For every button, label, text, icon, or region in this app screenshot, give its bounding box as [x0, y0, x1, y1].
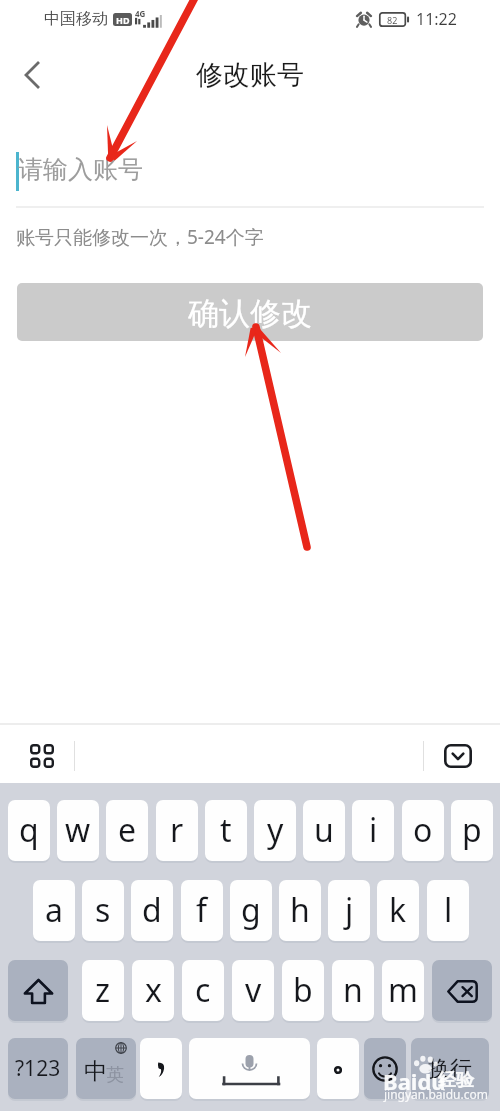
button[interactable]: c	[182, 960, 224, 1021]
button[interactable]: 请输入账号	[18, 154, 143, 185]
staticText: k	[389, 888, 407, 932]
staticText: 82	[387, 14, 398, 26]
button[interactable]: Keyboard layouts	[24, 738, 60, 774]
button[interactable]: l	[427, 880, 469, 941]
button[interactable]: s	[82, 880, 124, 941]
staticText: w	[65, 808, 91, 852]
button[interactable]: u	[303, 800, 345, 861]
staticText: b	[293, 968, 313, 1012]
staticText: s	[95, 888, 111, 932]
button[interactable]: t	[205, 800, 247, 861]
staticText: 经验	[438, 1069, 474, 1092]
button[interactable]: y	[254, 800, 296, 861]
staticText: 中国移动	[44, 9, 108, 29]
staticText: h	[290, 888, 310, 932]
button[interactable]: e	[106, 800, 148, 861]
button[interactable]: Back	[8, 51, 56, 99]
staticText: q	[19, 808, 39, 852]
staticText: n	[343, 968, 363, 1012]
button[interactable]: x	[132, 960, 174, 1021]
staticText: v	[245, 968, 262, 1012]
button[interactable]: j	[328, 880, 370, 941]
staticText: o	[413, 808, 433, 852]
button[interactable]: r	[156, 800, 198, 861]
staticText: r	[170, 808, 184, 852]
staticText: t	[220, 808, 232, 852]
staticText: g	[241, 888, 261, 932]
button[interactable]: w	[57, 800, 99, 861]
staticText: jingyan.baidu.com	[384, 1086, 488, 1102]
button[interactable]: q	[8, 800, 50, 861]
button[interactable]: h	[279, 880, 321, 941]
button[interactable]: i	[352, 800, 394, 861]
button[interactable]: 换行	[411, 1038, 489, 1099]
staticText: Baidu	[383, 1066, 446, 1096]
button[interactable]: ?123	[8, 1038, 68, 1099]
staticText: 确认修改	[188, 294, 312, 333]
staticText: 换行	[428, 1055, 472, 1083]
staticText: ?123	[15, 1054, 61, 1083]
button[interactable]: g	[230, 880, 272, 941]
button[interactable]: 表情	[364, 1038, 406, 1099]
staticText: j	[345, 888, 354, 932]
staticText: HD	[116, 14, 130, 26]
button[interactable]: Shift	[8, 960, 68, 1021]
button[interactable]: m	[382, 960, 424, 1021]
button[interactable]: k	[377, 880, 419, 941]
button[interactable]: p	[451, 800, 493, 861]
button[interactable]: n	[332, 960, 374, 1021]
staticText: 账号只能修改一次，5-24个字	[16, 224, 264, 250]
button[interactable]: Backspace	[432, 960, 492, 1021]
staticText: f	[196, 888, 208, 932]
staticText: m	[388, 968, 418, 1012]
staticText: 修改账号	[196, 58, 304, 92]
staticText: p	[462, 808, 482, 852]
button[interactable]: f	[181, 880, 223, 941]
button[interactable]: 中英切换	[76, 1038, 136, 1099]
button[interactable]: 句号	[317, 1038, 359, 1099]
staticText: c	[195, 968, 211, 1012]
staticText: e	[118, 808, 137, 852]
button[interactable]: o	[402, 800, 444, 861]
staticText: a	[45, 888, 63, 932]
button[interactable]: 空格	[189, 1038, 310, 1099]
button[interactable]: d	[131, 880, 173, 941]
staticText: y	[267, 808, 284, 852]
button[interactable]: a	[33, 880, 75, 941]
staticText: 中	[84, 1057, 107, 1086]
staticText: u	[314, 808, 334, 852]
staticText: 11:22	[416, 8, 457, 30]
button[interactable]: 确认修改	[17, 283, 483, 341]
staticText: l	[444, 888, 453, 932]
staticText: i	[369, 808, 378, 852]
staticText: 4G	[135, 8, 146, 19]
button[interactable]: z	[82, 960, 124, 1021]
button[interactable]: v	[232, 960, 274, 1021]
staticText: x	[145, 968, 162, 1012]
staticText: 英	[106, 1064, 124, 1087]
button[interactable]: Hide keyboard	[440, 738, 476, 774]
button[interactable]: 逗号	[140, 1038, 182, 1099]
staticText: d	[142, 888, 162, 932]
staticText: z	[95, 968, 111, 1012]
button[interactable]: b	[282, 960, 324, 1021]
